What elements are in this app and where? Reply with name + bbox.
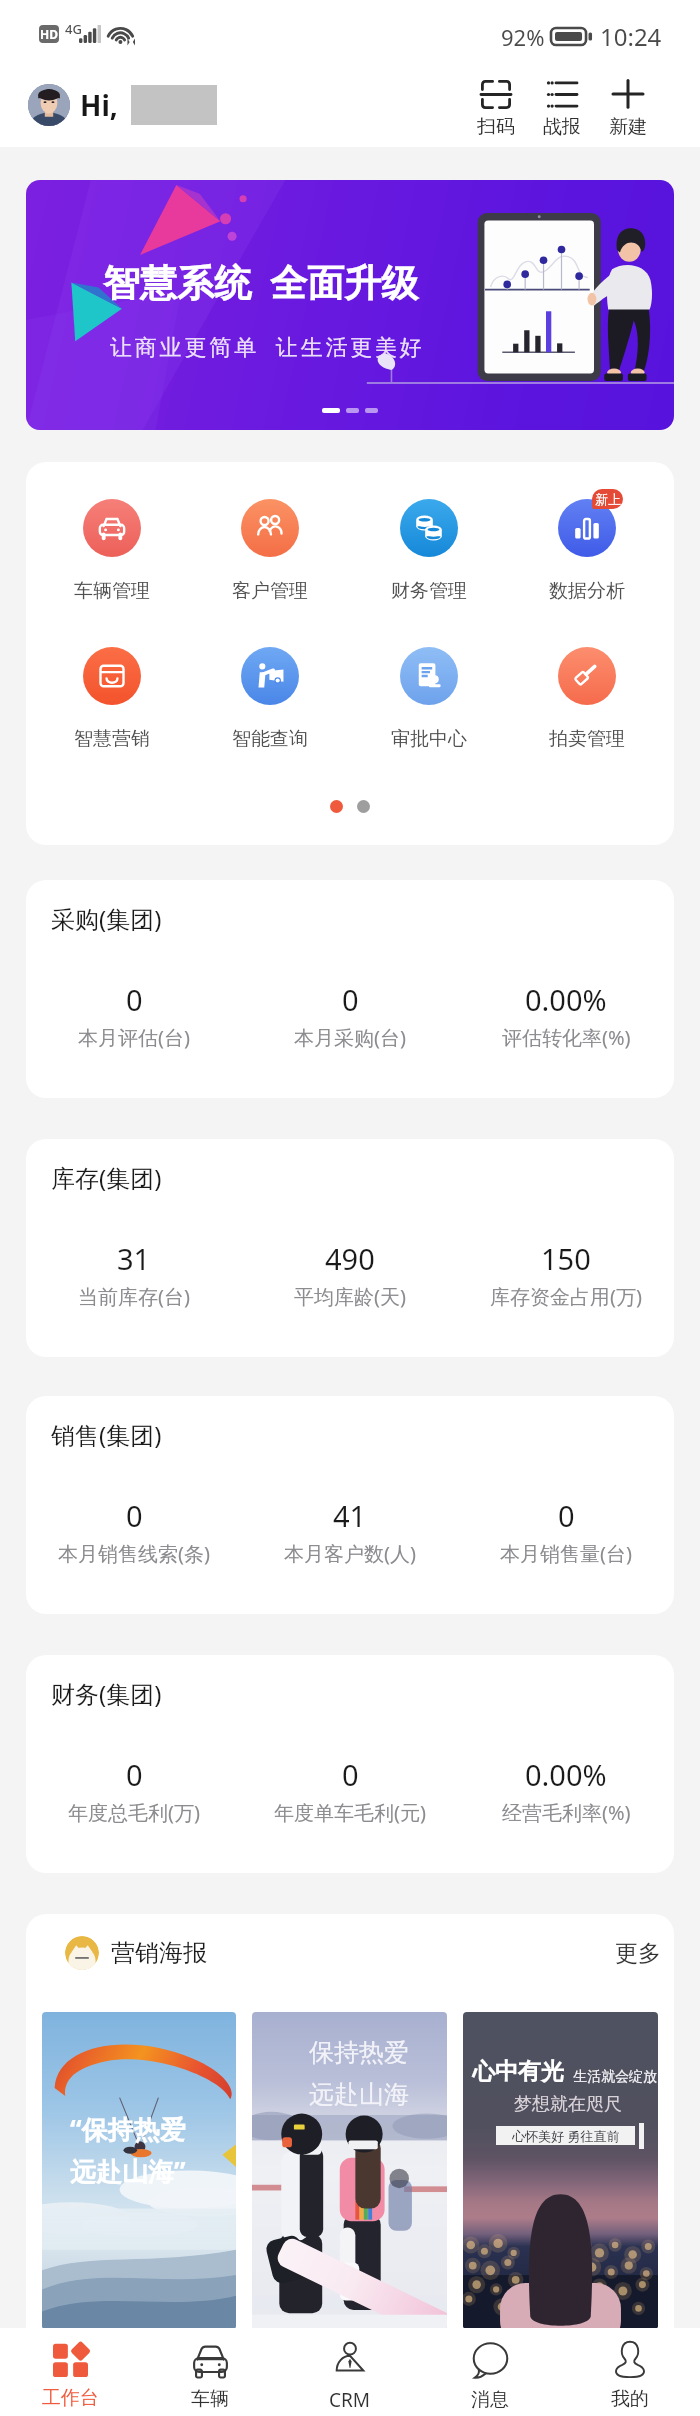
staticText: 扫码 (477, 115, 514, 139)
staticText: 审批中心 (391, 727, 467, 751)
staticText: 490 (325, 1239, 375, 1278)
staticText: 4G (65, 20, 82, 38)
button[interactable]: 智慧营销 (56, 647, 168, 751)
button[interactable]: 更多 (615, 1939, 661, 1968)
staticText: 41 (333, 1496, 367, 1535)
staticText: 我的 (611, 2387, 649, 2411)
staticText: 库存资金占用(万) (490, 1283, 642, 1310)
button[interactable]: 心中有光 (463, 2012, 658, 2329)
staticText: 本月客户数(人) (284, 1540, 416, 1567)
button[interactable]: 新上 (531, 499, 643, 603)
staticText: 0 (342, 1755, 359, 1794)
staticText: 本月采购(台) (294, 1024, 406, 1051)
staticText: 150 (541, 1239, 591, 1278)
staticText: 年度总毛利(万) (68, 1799, 200, 1826)
staticText: 工作台 (42, 2386, 99, 2410)
button[interactable]: Create new (609, 80, 646, 139)
staticText: 消息 (471, 2388, 509, 2412)
staticText: 当前库存(台) (78, 1283, 190, 1310)
staticText: 数据分析 (549, 579, 625, 603)
button[interactable]: 车辆管理 (56, 499, 168, 603)
staticText: 本月销售量(台) (500, 1540, 632, 1567)
staticText: 0 (126, 1755, 143, 1794)
button[interactable]: 智慧系统 全面升级 (26, 180, 674, 430)
staticText: 0 (126, 1496, 143, 1535)
staticText: 销售(集团) (51, 1418, 162, 1451)
staticText: 智慧系统 全面升级 (103, 256, 419, 307)
staticText: HD (40, 26, 58, 42)
staticText: 远赴山海” (70, 2153, 186, 2189)
staticText: 保持热爱 (309, 2037, 409, 2068)
staticText: 经营毛利率(%) (502, 1799, 631, 1826)
staticText: 拍卖管理 (549, 727, 625, 751)
staticText: 0 (342, 980, 359, 1019)
staticText: 远赴山海 (309, 2079, 409, 2110)
staticText: 生活就会绽放 (573, 2068, 657, 2086)
staticText: 梦想就在咫尺 (514, 2093, 622, 2116)
staticText: 智能查询 (232, 727, 308, 751)
button[interactable]: 财务(集团) (26, 1655, 674, 1873)
staticText: 战报 (543, 115, 580, 139)
button[interactable]: 智能查询 (214, 647, 326, 751)
button[interactable]: 客户管理 (214, 499, 326, 603)
button[interactable]: 财务管理 (373, 499, 485, 603)
staticText: 财务管理 (391, 579, 467, 603)
staticText: 客户管理 (232, 579, 308, 603)
staticText: 让商业更简单 让生活更美好 (110, 331, 425, 361)
staticText: 本月评估(台) (78, 1024, 190, 1051)
staticText: 年度单车毛利(元) (274, 1799, 426, 1826)
staticText: 评估转化率(%) (502, 1024, 631, 1051)
staticText: 31 (117, 1239, 151, 1278)
staticText: 库存(集团) (51, 1161, 162, 1194)
staticText: 采购(集团) (51, 902, 162, 935)
button[interactable]: 车辆 (140, 2328, 280, 2416)
button[interactable]: 保持热爱 (252, 2012, 447, 2329)
staticText: 财务(集团) (51, 1677, 162, 1710)
button[interactable]: Scan code (477, 80, 514, 139)
staticText: 10:24 (600, 20, 662, 53)
button[interactable]: 我的 (560, 2328, 700, 2416)
button[interactable]: CRM (280, 2328, 420, 2416)
button[interactable]: 采购(集团) (26, 880, 674, 1098)
staticText: 新建 (609, 115, 646, 139)
staticText: CRM (329, 2387, 371, 2413)
staticText: 营销海报 (111, 1938, 207, 1968)
button[interactable]: 消息 (420, 2328, 560, 2416)
button[interactable]: “保持热爱 (42, 2012, 236, 2329)
staticText: “保持热爱 (70, 2111, 186, 2147)
button[interactable]: 拍卖管理 (531, 647, 643, 751)
button[interactable]: 库存(集团) (26, 1139, 674, 1357)
staticText: 车辆 (191, 2387, 229, 2411)
staticText: 本月销售线索(条) (58, 1540, 210, 1567)
button[interactable]: 工作台 (0, 2328, 140, 2416)
button[interactable]: Reports (543, 80, 580, 139)
staticText: 更多 (615, 1939, 661, 1968)
staticText: 心中有光 (472, 2057, 564, 2086)
staticText: 平均库龄(天) (294, 1283, 406, 1310)
staticText: 心怀美好 勇往直前 (512, 2127, 620, 2145)
staticText: 0 (126, 980, 143, 1019)
staticText: 0.00% (525, 1755, 607, 1794)
staticText: 0.00% (525, 980, 607, 1019)
staticText: 新上 (595, 491, 621, 507)
staticText: 0 (558, 1496, 575, 1535)
button[interactable]: 销售(集团) (26, 1396, 674, 1614)
staticText: Hi, (80, 86, 118, 124)
staticText: 92% (501, 22, 545, 52)
staticText: 车辆管理 (74, 579, 150, 603)
staticText: 智慧营销 (74, 727, 150, 751)
button[interactable]: 审批中心 (373, 647, 485, 751)
